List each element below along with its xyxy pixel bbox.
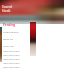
staticText: Pending bbox=[3, 23, 16, 27]
staticText: Lorem ipsum bbox=[3, 30, 19, 33]
staticText: Item text here bbox=[3, 61, 20, 64]
staticText: Amet con bbox=[3, 44, 15, 47]
button[interactable]: Item text here bbox=[3, 64, 23, 68]
button[interactable]: Photo bbox=[30, 22, 36, 56]
button[interactable]: Item text here bbox=[3, 48, 23, 52]
staticText: Item text here bbox=[3, 57, 20, 60]
staticText: Dolor sit bbox=[3, 37, 13, 40]
staticText: Seared Steak bbox=[2, 5, 13, 13]
button[interactable]: Item text here bbox=[3, 60, 23, 64]
button[interactable]: Item text here bbox=[3, 56, 23, 60]
staticText: Item text here bbox=[3, 49, 20, 52]
staticText: Item text here bbox=[3, 65, 20, 68]
staticText: Item text here bbox=[3, 53, 20, 56]
button[interactable]: Item text here bbox=[3, 52, 23, 56]
